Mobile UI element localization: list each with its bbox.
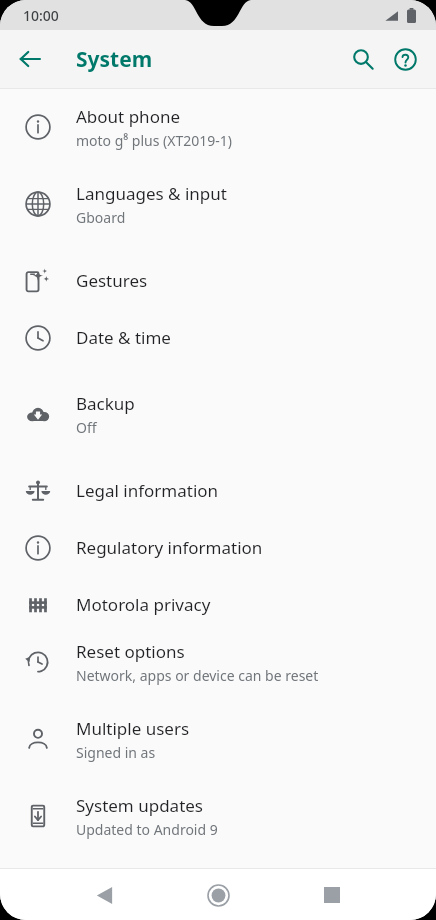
button[interactable]: Multiple users — [0, 710, 436, 768]
staticText: Languages & input — [76, 182, 227, 205]
staticText: Reset options — [76, 640, 185, 663]
button[interactable]: Legal information — [0, 462, 436, 519]
staticText: Legal information — [76, 479, 219, 502]
staticText: Motorola privacy — [76, 593, 211, 616]
staticText: Multiple users — [76, 717, 190, 740]
button[interactable]: Reset options — [0, 633, 436, 691]
button[interactable]: Search — [342, 38, 384, 80]
staticText: System updates — [76, 794, 204, 817]
button[interactable]: Languages & input — [0, 175, 436, 233]
staticText: Updated to Android 9 — [76, 820, 218, 839]
staticText: Signed in as — [76, 743, 156, 762]
staticText: Network, apps or device can be reset — [76, 666, 319, 685]
button[interactable]: Regulatory information — [0, 519, 436, 576]
staticText: Gestures — [76, 269, 148, 292]
staticText: Gboard — [76, 208, 126, 227]
staticText: moto g⁸ plus (XT2019-1) — [76, 131, 233, 150]
button[interactable]: Date & time — [0, 309, 436, 366]
staticText: Off — [76, 418, 97, 437]
staticText: Regulatory information — [76, 536, 263, 559]
button[interactable]: Back — [10, 39, 50, 79]
button[interactable]: System updates — [0, 787, 436, 845]
button[interactable]: Help — [384, 38, 426, 80]
button[interactable]: Gestures — [0, 252, 436, 309]
staticText: About phone — [76, 105, 181, 128]
staticText: Date & time — [76, 326, 171, 349]
button[interactable]: Motorola privacy — [0, 576, 436, 633]
button[interactable]: Recents — [308, 871, 356, 919]
staticText: 10:00 — [23, 6, 59, 25]
button[interactable]: About phone — [0, 98, 436, 156]
staticText: Backup — [76, 392, 135, 415]
staticText: System — [76, 45, 153, 74]
button[interactable]: Home — [194, 871, 242, 919]
button[interactable]: Back — [80, 871, 128, 919]
button[interactable]: Backup — [0, 385, 436, 443]
